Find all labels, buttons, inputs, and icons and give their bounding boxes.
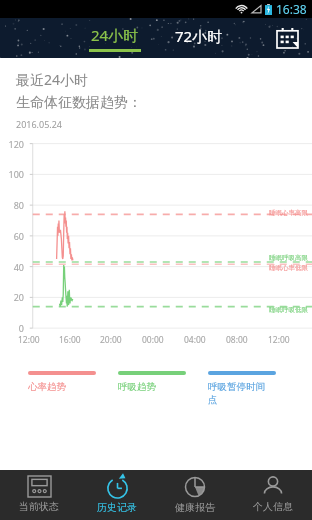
staticText: 当前状态 [19,500,59,513]
button[interactable]: 当前状态 [0,470,78,520]
button[interactable]: 个人信息 [234,470,312,520]
staticText: 00:00 [142,334,164,346]
staticText: 呼吸暂停时间点 [208,381,274,405]
staticText: 历史记录 [97,501,137,514]
button[interactable]: 24小时 [79,23,151,54]
staticText: 睡眠呼吸低限 [269,306,308,314]
staticText: 0 [0,322,24,334]
staticText: 16:38 [276,1,307,17]
staticText: 12:00 [18,334,40,346]
staticText: 睡眠心率高限 [269,209,308,217]
button[interactable]: 历史记录 [78,470,156,520]
staticText: 16:00 [59,334,81,346]
staticText: 健康报告 [175,501,215,514]
button[interactable]: 72小时 [165,27,233,51]
button[interactable]: 健康报告 [156,470,234,520]
staticText: 24小时 [91,25,139,45]
staticText: 20:00 [100,334,122,346]
staticText: 睡眠呼吸高限 [269,254,308,262]
staticText: 生命体征数据趋势： [16,94,142,112]
staticText: 80 [0,199,24,211]
staticText: 40 [0,261,24,273]
staticText: 12:00 [268,334,290,346]
button[interactable]: Select date [270,21,304,55]
staticText: 最近24小时 [16,70,89,89]
staticText: 20 [0,291,24,303]
staticText: 60 [0,230,24,242]
staticText: 睡眠心率低限 [269,264,308,272]
staticText: 72小时 [175,26,223,46]
staticText: 呼吸趋势 [118,381,184,393]
staticText: 04:00 [184,334,206,346]
staticText: 个人信息 [253,500,293,513]
staticText: 心率趋势 [28,381,94,393]
staticText: 120 [0,138,24,150]
staticText: 100 [0,168,24,180]
staticText: 2016.05.24 [16,118,63,130]
staticText: 08:00 [226,334,248,346]
